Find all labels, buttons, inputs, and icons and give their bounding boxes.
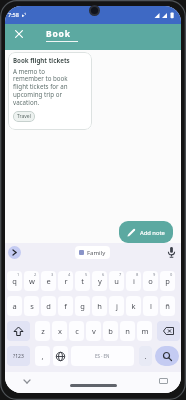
staticText: i xyxy=(133,276,135,286)
staticText: , xyxy=(41,351,44,361)
staticText: 8 xyxy=(136,272,139,277)
staticText: . xyxy=(144,351,147,361)
staticText: e xyxy=(46,276,51,286)
button[interactable]: Book xyxy=(46,28,78,42)
button[interactable]: Travel xyxy=(17,113,31,120)
staticText: ?123 xyxy=(13,353,24,360)
button[interactable] xyxy=(168,247,175,258)
staticText: r xyxy=(64,276,68,286)
staticText: Travel xyxy=(17,113,31,120)
button[interactable]: k xyxy=(126,296,141,316)
button[interactable]: p xyxy=(160,271,175,291)
staticText: h xyxy=(97,301,102,311)
button[interactable]: ?123 xyxy=(7,346,30,366)
button[interactable]: d xyxy=(41,296,56,316)
button[interactable]: s xyxy=(24,296,39,316)
staticText: k xyxy=(131,301,136,311)
staticText: t xyxy=(81,276,84,286)
staticText: 6 xyxy=(102,272,105,277)
staticText: b xyxy=(108,326,113,336)
button[interactable]: j xyxy=(109,296,124,316)
button[interactable]: y xyxy=(92,271,107,291)
button[interactable] xyxy=(155,346,179,366)
button[interactable]: z xyxy=(35,321,50,341)
staticText: 4 xyxy=(68,272,71,277)
staticText: j xyxy=(116,301,118,311)
staticText: o xyxy=(148,276,153,286)
staticText: 5 xyxy=(85,272,88,277)
button[interactable] xyxy=(159,378,168,384)
button[interactable]: n xyxy=(120,321,135,341)
staticText: a xyxy=(12,301,17,311)
button[interactable]: c xyxy=(69,321,84,341)
staticText: q xyxy=(12,276,17,286)
button[interactable] xyxy=(53,346,68,366)
button[interactable] xyxy=(12,27,26,41)
staticText: z xyxy=(41,326,45,336)
button[interactable]: b xyxy=(103,321,118,341)
button[interactable]: w xyxy=(24,271,39,291)
button[interactable]: q xyxy=(7,271,22,291)
staticText: Add note xyxy=(140,229,165,237)
staticText: 2 xyxy=(34,272,37,277)
button[interactable]: r xyxy=(58,271,73,291)
button[interactable]: ES · EN xyxy=(71,346,134,366)
button[interactable]: h xyxy=(92,296,107,316)
button[interactable]: o xyxy=(143,271,158,291)
staticText: m xyxy=(141,326,149,336)
button[interactable]: x xyxy=(52,321,67,341)
staticText: l xyxy=(150,301,152,311)
staticText: f xyxy=(64,301,67,311)
button[interactable]: Book flight tickets xyxy=(8,52,92,130)
staticText: n xyxy=(125,326,130,336)
button[interactable]: e xyxy=(41,271,56,291)
button[interactable]: t xyxy=(75,271,90,291)
button[interactable] xyxy=(157,321,180,341)
button[interactable]: . xyxy=(139,346,152,366)
button[interactable]: , xyxy=(35,346,50,366)
staticText: x xyxy=(58,326,62,336)
button[interactable] xyxy=(8,246,21,259)
button[interactable]: ñ xyxy=(160,296,175,316)
staticText: ES · EN xyxy=(95,353,110,359)
button[interactable]: g xyxy=(75,296,90,316)
staticText: w xyxy=(29,276,35,286)
button[interactable]: Add note xyxy=(119,221,173,243)
staticText: 7:58 xyxy=(8,11,19,18)
button[interactable]: v xyxy=(86,321,101,341)
staticText: c xyxy=(75,326,79,336)
button[interactable] xyxy=(7,321,30,341)
staticText: s xyxy=(30,301,34,311)
staticText: A memo to remember to book flight ticket… xyxy=(13,67,68,107)
staticText: d xyxy=(46,301,51,311)
button[interactable] xyxy=(24,380,30,383)
staticText: u xyxy=(114,276,119,286)
staticText: ñ xyxy=(165,301,170,311)
staticText: ▸¹ xyxy=(22,12,26,18)
staticText: 9 xyxy=(153,272,156,277)
button[interactable]: l xyxy=(143,296,158,316)
staticText: p xyxy=(165,276,170,286)
staticText: Family xyxy=(87,249,106,257)
button[interactable]: m xyxy=(137,321,152,341)
button[interactable]: f xyxy=(58,296,73,316)
staticText: y xyxy=(98,276,102,286)
staticText: Book xyxy=(46,28,71,40)
staticText: v xyxy=(92,326,96,336)
staticText: 0 xyxy=(170,272,173,277)
staticText: g xyxy=(80,301,85,311)
button[interactable]: Family xyxy=(79,246,106,259)
staticText: 3 xyxy=(51,272,54,277)
staticText: 1 xyxy=(17,272,20,277)
button[interactable]: u xyxy=(109,271,124,291)
button[interactable]: a xyxy=(7,296,22,316)
staticText: Book flight tickets xyxy=(13,56,70,64)
button[interactable]: i xyxy=(126,271,141,291)
staticText: 7 xyxy=(119,272,122,277)
